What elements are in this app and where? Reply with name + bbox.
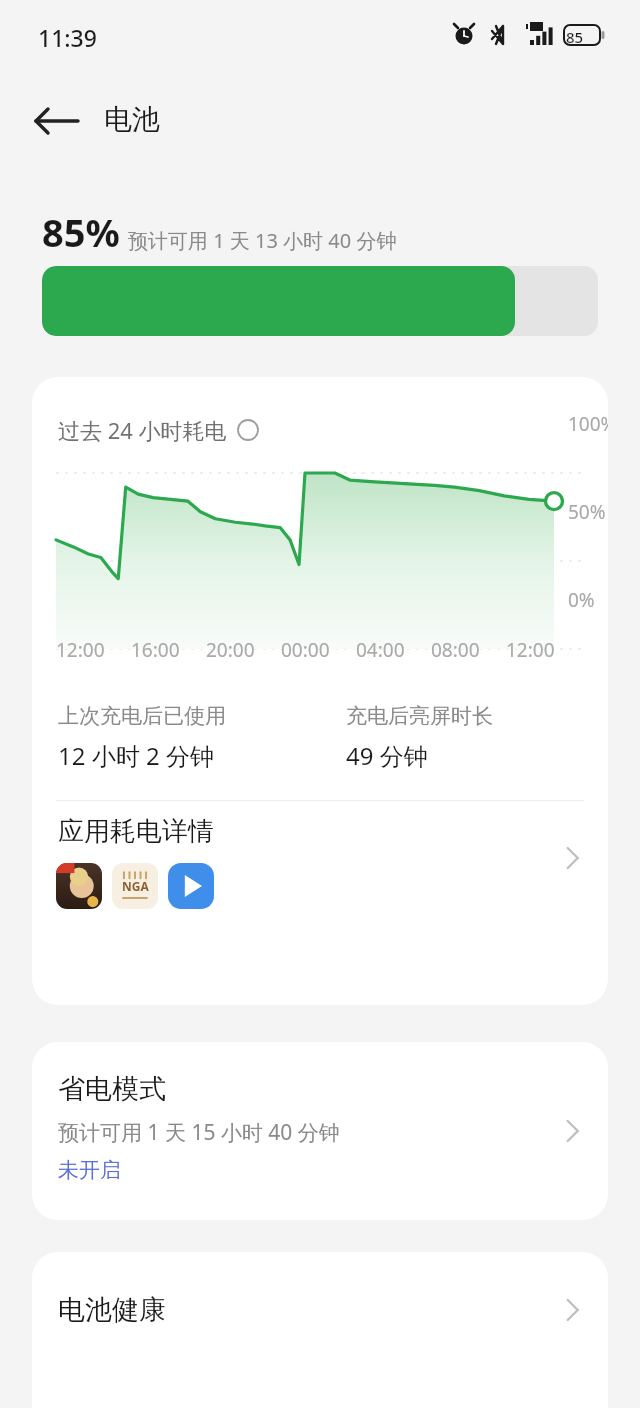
button[interactable]: Back [28, 92, 86, 150]
button[interactable]: 应用耗电详情 [32, 801, 608, 931]
staticText: 应用耗电详情 [58, 815, 214, 848]
staticText: 11:39 [38, 22, 97, 53]
staticText: NGA [122, 878, 149, 894]
staticText: 04:00 [356, 637, 405, 663]
staticText: 100% [568, 411, 608, 437]
staticText: 85 [566, 27, 584, 47]
staticText: 50% [568, 499, 606, 525]
button[interactable]: 电池健康 [32, 1252, 608, 1356]
staticText: 85% [42, 206, 120, 258]
staticText: 过去 24 小时耗电 [58, 415, 227, 445]
staticText: 预计可用 1 天 15 小时 40 分钟 [58, 1118, 340, 1147]
staticText: 49 分钟 [346, 739, 428, 772]
staticText: 12:00 [506, 637, 555, 663]
staticText: 省电模式 [58, 1072, 166, 1106]
staticText: 12:00 [56, 637, 105, 663]
staticText: 电池 [104, 102, 160, 137]
staticText: 12 小时 2 分钟 [58, 739, 214, 772]
staticText: 未开启 [58, 1157, 121, 1183]
staticText: 00:00 [281, 637, 330, 663]
staticText: 预计可用 1 天 13 小时 40 分钟 [128, 227, 397, 254]
staticText: 08:00 [431, 637, 480, 663]
button[interactable]: 省电模式 [32, 1042, 608, 1220]
staticText: 20:00 [206, 637, 255, 663]
staticText: 16:00 [131, 637, 180, 663]
staticText: 上次充电后已使用 [58, 703, 226, 729]
staticText: 充电后亮屏时长 [346, 703, 493, 729]
staticText: 0% [568, 587, 595, 613]
staticText: 电池健康 [58, 1293, 166, 1327]
